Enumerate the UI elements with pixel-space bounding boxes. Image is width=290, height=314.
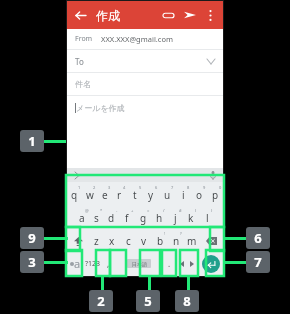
staticText: o [196, 188, 203, 202]
staticText: 5 [144, 292, 152, 310]
staticText: 日本語 [132, 261, 147, 267]
staticText: 9 [28, 229, 36, 247]
staticText: e [102, 188, 108, 202]
staticText: # [179, 208, 182, 213]
button[interactable]: More options [202, 7, 218, 23]
staticText: 6 [155, 185, 158, 190]
button[interactable]: z [89, 230, 104, 252]
staticText: + [131, 208, 134, 213]
staticText: 1 [78, 185, 81, 190]
button[interactable]: 3 [97, 184, 112, 206]
staticText: * [100, 208, 103, 213]
staticText: 件名 [75, 79, 91, 89]
button[interactable]: ) [199, 207, 215, 229]
button[interactable]: メールを作成 [67, 96, 223, 120]
staticText: 2 [93, 185, 96, 190]
staticText: m [187, 234, 197, 248]
staticText: - [116, 208, 118, 213]
staticText: b [157, 234, 164, 248]
button[interactable]: 日本語 [115, 253, 162, 274]
button[interactable]: 4 [112, 184, 127, 206]
staticText: 2 [97, 292, 105, 310]
staticText: a [79, 211, 85, 225]
staticText: 3 [28, 253, 36, 271]
staticText: ( [195, 208, 197, 213]
button[interactable]: # [167, 207, 183, 229]
button[interactable]: = [135, 207, 151, 229]
staticText: y [148, 188, 154, 202]
staticText: From [75, 34, 93, 44]
staticText: j [174, 211, 177, 225]
staticText: g [140, 211, 147, 225]
staticText: t [133, 188, 137, 202]
staticText: a [74, 256, 81, 271]
button[interactable]: 6 [143, 184, 159, 206]
staticText: d [108, 211, 115, 225]
button[interactable]: v [136, 230, 152, 252]
button[interactable]: ! [152, 230, 168, 252]
button[interactable]: m [184, 230, 200, 252]
staticText: 7 [254, 253, 262, 271]
button[interactable]: 5 [127, 184, 143, 206]
staticText: ? [180, 231, 182, 236]
staticText: To [75, 56, 84, 67]
staticText: 6 [254, 229, 262, 247]
button[interactable]: + [119, 207, 135, 229]
staticText: 5 [139, 185, 142, 190]
button[interactable]: ( [183, 207, 199, 229]
button[interactable]: @ [74, 207, 89, 229]
button[interactable]: 7 [159, 184, 175, 206]
staticText: k [188, 211, 194, 225]
staticText: ) [211, 208, 213, 213]
staticText: s [94, 211, 99, 225]
button[interactable]: ?123 [84, 253, 101, 274]
button[interactable]: Enter [198, 253, 223, 274]
staticText: @ [85, 208, 89, 213]
button[interactable]: c [120, 230, 136, 252]
staticText: . [168, 258, 171, 269]
staticText: 4 [123, 185, 126, 190]
button[interactable]: 8 [175, 184, 191, 206]
button[interactable]: / [151, 207, 167, 229]
button[interactable]: , [101, 253, 115, 274]
button[interactable]: 2 [82, 184, 97, 206]
button[interactable]: More suggestions [72, 171, 81, 180]
staticText: x [109, 234, 115, 248]
button[interactable]: Backspace [200, 230, 223, 252]
button[interactable]: Move cursor [176, 253, 198, 274]
button[interactable]: 9 [191, 184, 207, 206]
button[interactable]: To [67, 50, 223, 72]
staticText: 3 [108, 185, 111, 190]
button[interactable]: Attach file [159, 6, 177, 24]
staticText: 1 [28, 132, 36, 150]
staticText: 7 [171, 185, 174, 190]
button[interactable]: Send [181, 6, 199, 24]
button[interactable]: x [104, 230, 120, 252]
button[interactable]: 1 [67, 184, 82, 206]
staticText: 作成 [96, 8, 120, 23]
button[interactable]: Voice input [207, 170, 218, 181]
button[interactable]: ? [168, 230, 184, 252]
staticText: z [94, 234, 99, 248]
staticText: ! [164, 231, 166, 236]
staticText: f [125, 211, 129, 225]
staticText: XXX.XXX@gmail.com [101, 34, 173, 44]
staticText: 9 [203, 185, 206, 190]
button[interactable]: 件名 [67, 73, 223, 95]
button[interactable]: . [162, 253, 176, 274]
staticText: / [163, 208, 165, 213]
button[interactable]: 0 [207, 184, 223, 206]
staticText: 8 [187, 185, 190, 190]
staticText: = [147, 208, 150, 213]
button[interactable]: Language [67, 253, 84, 274]
staticText: メールを作成 [76, 103, 125, 113]
staticText: i [182, 188, 185, 202]
staticText: 0 [219, 185, 222, 190]
button[interactable]: Shift [67, 230, 89, 252]
button[interactable]: * [89, 207, 104, 229]
button[interactable]: - [104, 207, 119, 229]
staticText: , [107, 258, 110, 269]
button[interactable]: Back [72, 7, 88, 23]
staticText: l [206, 211, 209, 225]
staticText: u [164, 188, 171, 202]
